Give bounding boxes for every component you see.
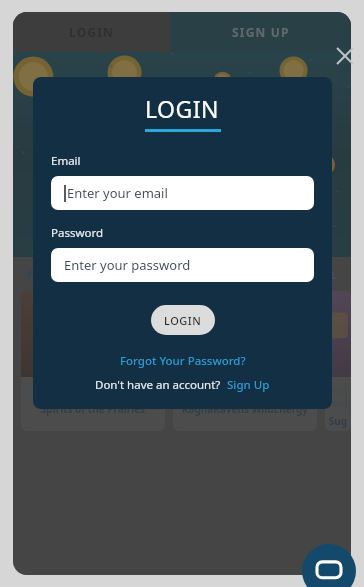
button[interactable]: Yggdrasil (173, 291, 317, 431)
staticText: Platipus (21, 385, 165, 397)
staticText: Enter your email (67, 184, 168, 202)
button[interactable]: LOGIN (13, 12, 170, 52)
button[interactable]: SIGN UP (170, 12, 351, 52)
staticText: Email (51, 153, 81, 169)
staticText: Pragmatic (325, 385, 351, 409)
button[interactable]: Chat support (302, 544, 356, 587)
staticText: Don't have an account? (95, 377, 221, 393)
staticText: LOGIN (164, 313, 202, 328)
staticText: LOGIN (145, 93, 220, 124)
staticText: Spirits of the Prairies (24, 402, 162, 416)
staticText: Sign Up (227, 377, 270, 393)
button[interactable]: Sign Up (227, 377, 270, 393)
staticText: Forgot Your Password? (120, 353, 246, 369)
button[interactable]: Enter your password (51, 248, 314, 282)
staticText: NEW (27, 266, 56, 282)
button[interactable]: Forgot Your Password? (51, 353, 314, 369)
staticText: Sugar Bonanza (328, 414, 348, 428)
button[interactable]: Pragmatic (325, 291, 351, 431)
staticText: Yggdrasil (173, 385, 317, 397)
staticText: Password (51, 225, 104, 241)
staticText: SIGN UP (232, 24, 290, 40)
staticText: ALL (317, 267, 337, 282)
button[interactable]: Enter your email (51, 176, 314, 210)
button[interactable]: Close (332, 43, 358, 69)
button[interactable]: Platipus (21, 291, 165, 431)
staticText: LOGIN (69, 24, 115, 40)
button[interactable]: LOGIN (151, 305, 215, 335)
staticText: Enter your password (64, 256, 191, 274)
staticText: RagnaRavens WildEnergy (176, 402, 314, 416)
